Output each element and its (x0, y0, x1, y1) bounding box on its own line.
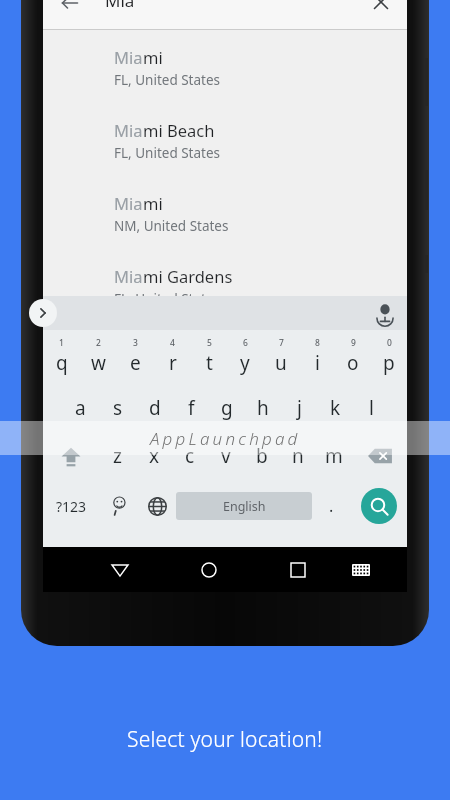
button[interactable]: ?123 (43, 480, 100, 532)
staticText: 0 (387, 337, 392, 349)
staticText: ?123 (56, 497, 87, 516)
button[interactable]: 5 (191, 336, 227, 384)
button[interactable]: c (172, 432, 208, 480)
button[interactable]: Home (185, 547, 232, 592)
staticText: k (330, 395, 341, 421)
staticText: j (297, 395, 302, 421)
button[interactable]: Expand suggestions (29, 299, 57, 327)
staticText: 4 (170, 337, 175, 349)
staticText: w (91, 350, 106, 376)
button[interactable]: f (173, 384, 209, 432)
staticText: s (113, 395, 123, 421)
button[interactable]: 9 (335, 336, 371, 384)
button[interactable]: Mia (43, 265, 407, 329)
staticText: English (223, 498, 266, 515)
staticText: z (113, 443, 122, 469)
button[interactable]: 0 (371, 336, 407, 384)
button[interactable]: 2 (80, 336, 117, 384)
button[interactable]: Mia (43, 46, 407, 110)
staticText: FL, United States (114, 71, 221, 89)
staticText: n (292, 443, 304, 469)
staticText: f (188, 395, 195, 421)
staticText: 3 (133, 337, 138, 349)
staticText: FL, United States (114, 144, 221, 162)
button[interactable]: Back (96, 547, 143, 592)
button[interactable]: Voice input (373, 301, 397, 325)
staticText: l (369, 395, 374, 421)
button[interactable]: d (136, 384, 173, 432)
button[interactable]: s (99, 384, 136, 432)
staticText: FL, United States (114, 290, 221, 308)
staticText: mi (143, 46, 163, 68)
staticText: d (149, 395, 161, 421)
staticText: AppLaunchpad (150, 427, 301, 450)
staticText: h (257, 395, 269, 421)
button[interactable]: Emoji (100, 480, 138, 532)
staticText: m (325, 443, 343, 469)
staticText: g (221, 395, 233, 421)
staticText: mi Gardens (143, 265, 233, 287)
staticText: . (329, 495, 334, 517)
button[interactable]: 7 (263, 336, 299, 384)
staticText: y (240, 350, 250, 376)
button[interactable]: j (281, 384, 317, 432)
button[interactable]: Switch keyboard (337, 547, 384, 592)
button[interactable]: Shift (43, 432, 99, 480)
staticText: c (185, 443, 195, 469)
button[interactable]: Recents (274, 547, 321, 592)
button[interactable]: l (353, 384, 389, 432)
button[interactable]: g (209, 384, 245, 432)
staticText: x (149, 443, 160, 469)
staticText: 7 (279, 337, 284, 349)
button[interactable]: Back (53, 0, 87, 15)
staticText: e (130, 350, 141, 376)
staticText: q (56, 350, 68, 376)
button[interactable]: 8 (299, 336, 335, 384)
staticText: Mia (105, 0, 135, 12)
button[interactable]: Backspace (352, 432, 407, 480)
button[interactable]: 4 (154, 336, 191, 384)
button[interactable]: x (136, 432, 172, 480)
button[interactable]: k (317, 384, 353, 432)
staticText: v (221, 443, 231, 469)
staticText: Select your location! (127, 725, 323, 754)
staticText: NM, United States (114, 217, 229, 235)
button[interactable]: 1 (43, 336, 80, 384)
staticText: 1 (59, 337, 64, 349)
staticText: Mia (114, 46, 143, 68)
button[interactable]: Mia (43, 192, 407, 256)
button[interactable]: n (280, 432, 316, 480)
button[interactable]: English (176, 492, 312, 520)
staticText: 6 (243, 337, 248, 349)
staticText: Mia (114, 265, 143, 287)
staticText: 9 (351, 337, 356, 349)
staticText: Mia (114, 119, 143, 141)
staticText: t (206, 350, 213, 376)
button[interactable]: b (244, 432, 280, 480)
staticText: mi (143, 192, 163, 214)
staticText: mi Beach (143, 119, 215, 141)
button[interactable]: m (316, 432, 352, 480)
button[interactable]: a (62, 384, 99, 432)
button[interactable]: 3 (117, 336, 154, 384)
staticText: o (347, 350, 359, 376)
button[interactable]: Change language (138, 480, 176, 532)
button[interactable]: Mia (43, 119, 407, 183)
button[interactable]: Back (43, 0, 407, 29)
button[interactable]: h (245, 384, 281, 432)
staticText: p (383, 350, 395, 376)
staticText: i (315, 350, 320, 376)
button[interactable]: Search (361, 488, 397, 524)
button[interactable]: Clear (365, 0, 397, 15)
button[interactable]: 6 (227, 336, 263, 384)
button[interactable]: v (208, 432, 244, 480)
button[interactable]: z (99, 432, 136, 480)
staticText: 8 (315, 337, 320, 349)
staticText: u (275, 350, 287, 376)
staticText: Mia (114, 192, 143, 214)
staticText: 2 (96, 337, 101, 349)
staticText: 5 (207, 337, 212, 349)
button[interactable]: . (312, 480, 350, 532)
staticText: b (256, 443, 268, 469)
staticText: r (169, 350, 177, 376)
